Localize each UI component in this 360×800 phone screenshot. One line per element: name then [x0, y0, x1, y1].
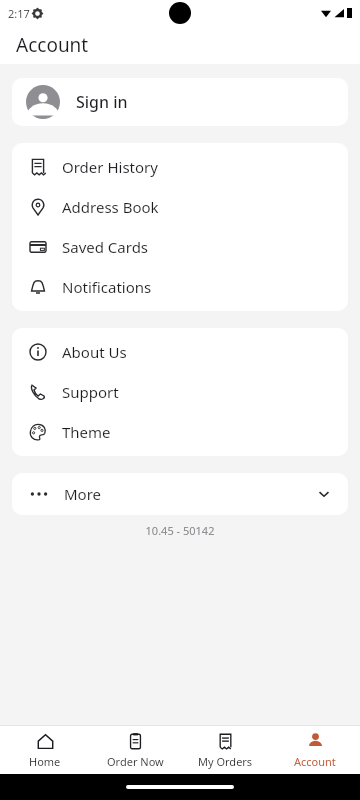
button[interactable]: About Us [12, 332, 348, 372]
button[interactable]: Theme [12, 412, 348, 452]
button[interactable]: More [12, 473, 348, 515]
button[interactable]: Order History [12, 147, 348, 187]
button[interactable]: Account [270, 726, 360, 774]
staticText: Account [16, 32, 89, 58]
staticText: Saved Cards [62, 237, 149, 257]
staticText: About Us [62, 342, 127, 362]
staticText: Home [29, 754, 61, 769]
button[interactable]: Saved Cards [12, 227, 348, 267]
staticText: 2:17 [8, 6, 30, 21]
staticText: Account [294, 754, 336, 769]
staticText: Notifications [62, 277, 152, 297]
staticText: Support [62, 382, 119, 402]
button[interactable]: Address Book [12, 187, 348, 227]
button[interactable]: Home [0, 726, 90, 774]
button[interactable]: My Orders [180, 726, 270, 774]
staticText: Order History [62, 157, 158, 177]
button[interactable]: Order Now [90, 726, 180, 774]
staticText: Order Now [107, 754, 164, 769]
staticText: Sign in [76, 91, 128, 113]
button[interactable]: Notifications [12, 267, 348, 307]
staticText: More [64, 484, 102, 504]
staticText: My Orders [198, 754, 253, 769]
button[interactable]: Support [12, 372, 348, 412]
staticText: Theme [62, 422, 111, 442]
staticText: Address Book [62, 197, 159, 217]
staticText: 10.45 - 50142 [0, 523, 360, 538]
button[interactable]: Sign in [12, 78, 348, 126]
